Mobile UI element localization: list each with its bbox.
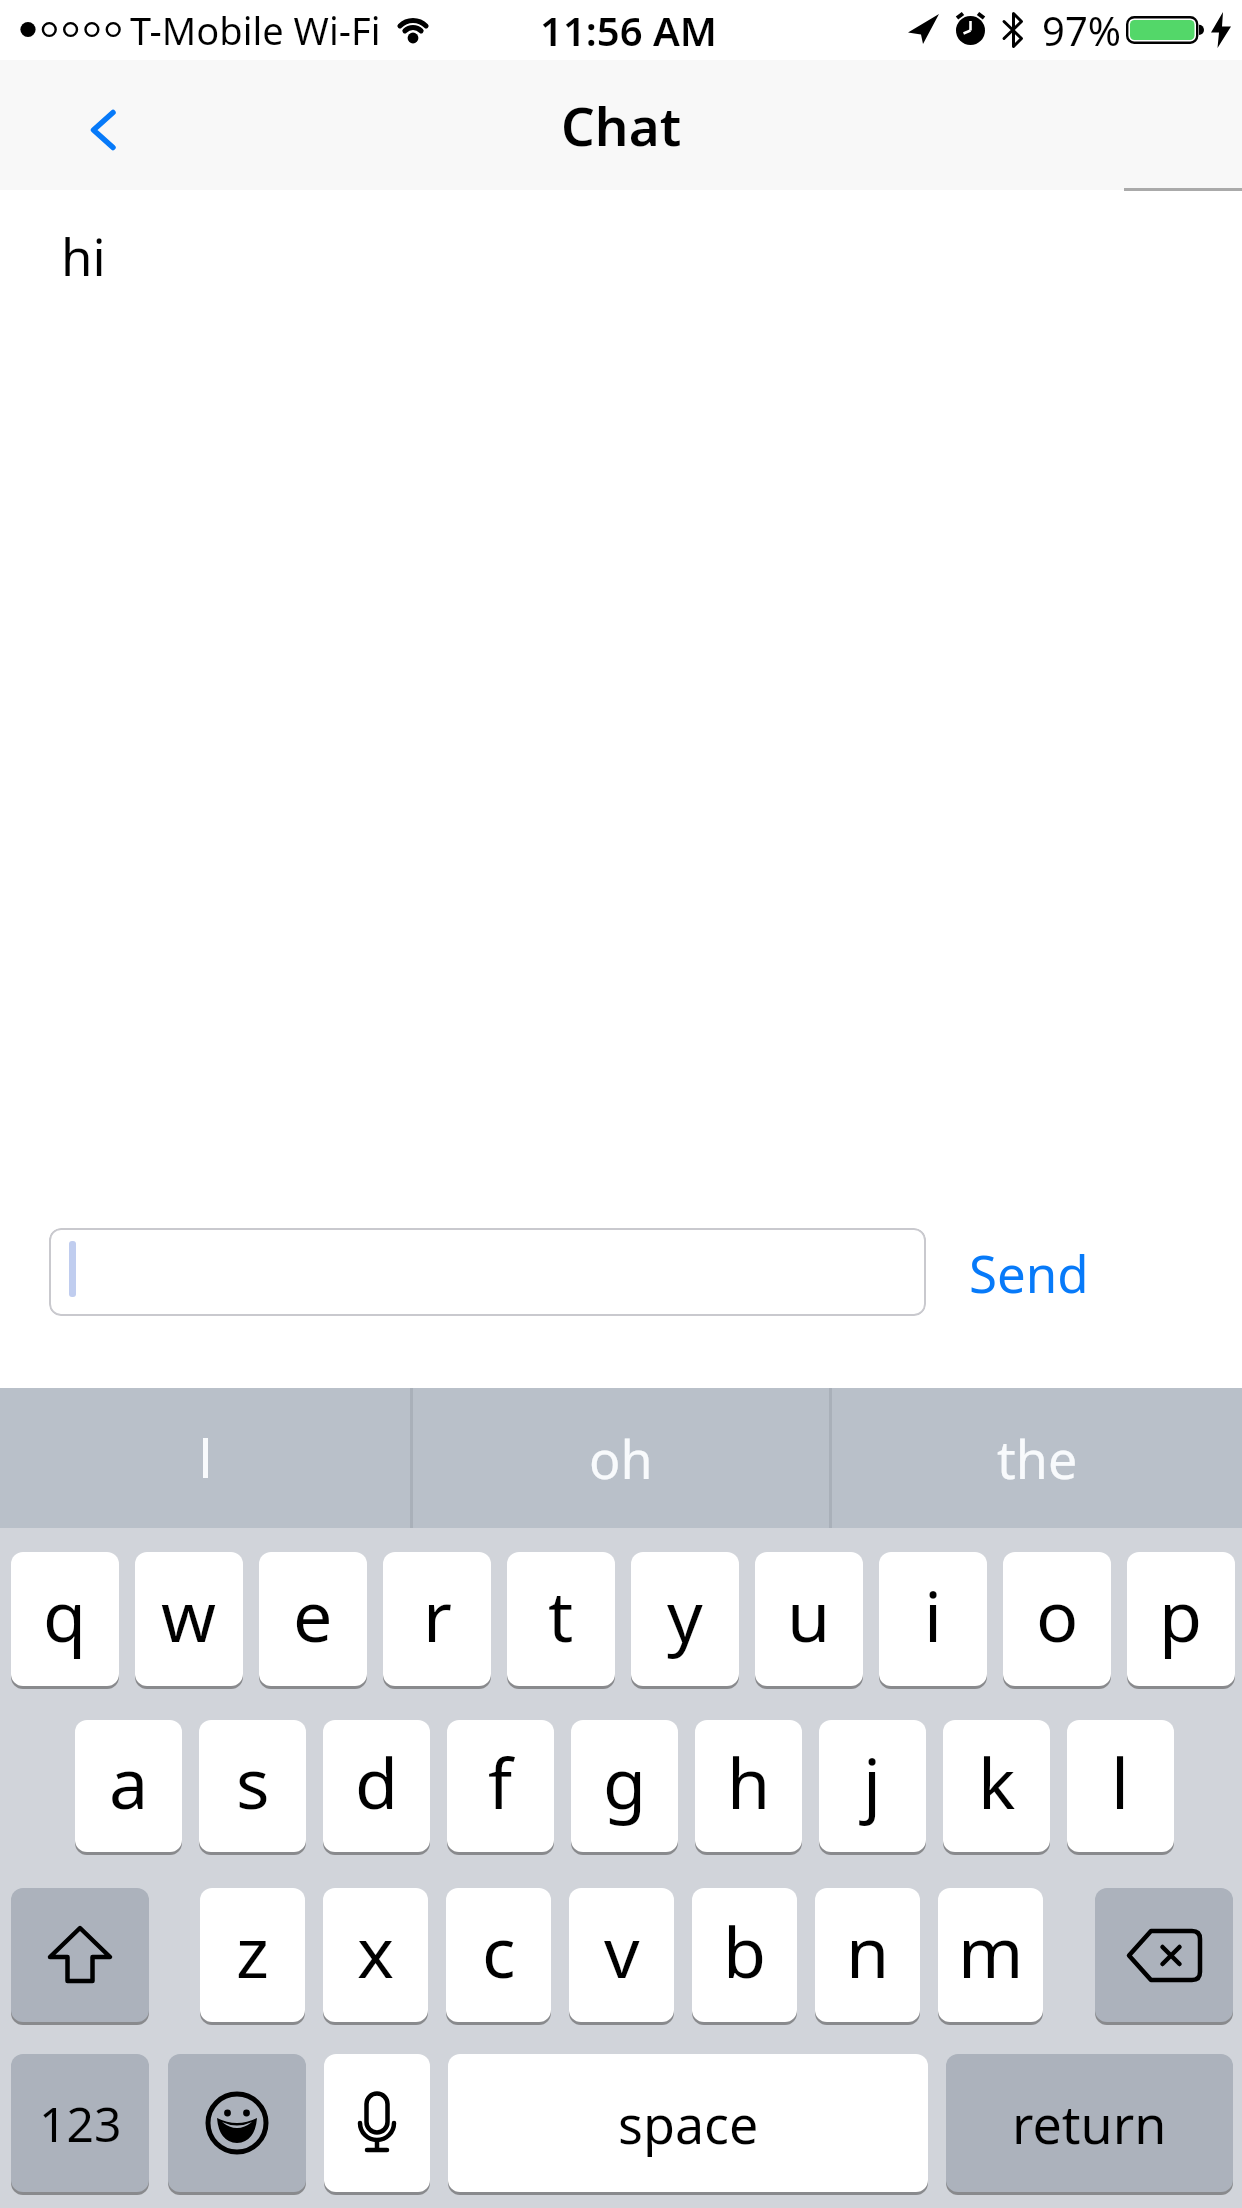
staticText: u bbox=[787, 1567, 831, 1662]
staticText: n bbox=[846, 1903, 890, 1998]
button[interactable]: h bbox=[695, 1720, 802, 1852]
button[interactable]: s bbox=[199, 1720, 306, 1852]
staticText: oh bbox=[589, 1423, 653, 1494]
button[interactable] bbox=[1095, 1888, 1233, 2022]
button[interactable]: the bbox=[832, 1388, 1242, 1528]
staticText: y bbox=[667, 1567, 703, 1662]
button[interactable] bbox=[324, 2054, 430, 2192]
button[interactable]: return bbox=[946, 2054, 1233, 2192]
staticText: Send bbox=[969, 1238, 1089, 1307]
staticText: v bbox=[604, 1903, 640, 1998]
button[interactable]: e bbox=[259, 1552, 367, 1686]
button[interactable]: f bbox=[447, 1720, 554, 1852]
button[interactable]: l bbox=[1067, 1720, 1174, 1852]
staticText: t bbox=[548, 1567, 574, 1662]
button[interactable]: c bbox=[446, 1888, 551, 2022]
button[interactable] bbox=[168, 2054, 306, 2192]
staticText: the bbox=[997, 1423, 1078, 1494]
button[interactable]: Send bbox=[952, 1228, 1092, 1316]
staticText: Chat bbox=[561, 89, 682, 161]
button[interactable]: q bbox=[11, 1552, 119, 1686]
staticText: e bbox=[293, 1567, 333, 1662]
button[interactable]: w bbox=[135, 1552, 243, 1686]
staticText: q bbox=[43, 1567, 87, 1662]
button[interactable]: d bbox=[323, 1720, 430, 1852]
button[interactable]: m bbox=[938, 1888, 1043, 2022]
button[interactable]: n bbox=[815, 1888, 920, 2022]
staticText: i bbox=[924, 1567, 943, 1662]
button[interactable] bbox=[11, 1888, 149, 2022]
button[interactable]: g bbox=[571, 1720, 678, 1852]
staticText: g bbox=[603, 1734, 647, 1829]
staticText: f bbox=[488, 1734, 513, 1829]
button[interactable] bbox=[49, 1228, 926, 1316]
staticText: 123 bbox=[39, 2091, 122, 2156]
staticText: k bbox=[978, 1734, 1016, 1829]
staticText: T-Mobile Wi-Fi bbox=[130, 4, 381, 56]
button[interactable]: r bbox=[383, 1552, 491, 1686]
button[interactable]: x bbox=[323, 1888, 428, 2022]
button[interactable]: v bbox=[569, 1888, 674, 2022]
button[interactable] bbox=[0, 1388, 410, 1528]
button[interactable]: j bbox=[819, 1720, 926, 1852]
button[interactable]: o bbox=[1003, 1552, 1111, 1686]
staticText: d bbox=[355, 1734, 399, 1829]
staticText: j bbox=[863, 1734, 882, 1829]
staticText: space bbox=[618, 2088, 759, 2159]
button[interactable]: k bbox=[943, 1720, 1050, 1852]
staticText: s bbox=[236, 1734, 270, 1829]
staticText: 97% bbox=[1042, 3, 1121, 57]
staticText: a bbox=[109, 1734, 149, 1829]
button[interactable]: p bbox=[1127, 1552, 1235, 1686]
staticText: m bbox=[958, 1903, 1024, 1998]
staticText: l bbox=[1111, 1734, 1130, 1829]
button[interactable]: i bbox=[879, 1552, 987, 1686]
button[interactable]: z bbox=[200, 1888, 305, 2022]
staticText: 11:56 AM bbox=[540, 3, 717, 57]
staticText: x bbox=[357, 1903, 395, 1998]
button[interactable]: t bbox=[507, 1552, 615, 1686]
button[interactable]: a bbox=[75, 1720, 182, 1852]
button[interactable] bbox=[70, 94, 136, 166]
staticText: return bbox=[1012, 2088, 1167, 2159]
button[interactable]: u bbox=[755, 1552, 863, 1686]
button[interactable]: space bbox=[448, 2054, 928, 2192]
staticText: p bbox=[1159, 1567, 1203, 1662]
button[interactable]: b bbox=[692, 1888, 797, 2022]
staticText: r bbox=[423, 1567, 452, 1662]
button[interactable]: 123 bbox=[11, 2054, 149, 2192]
staticText: w bbox=[161, 1567, 217, 1662]
button[interactable]: y bbox=[631, 1552, 739, 1686]
button[interactable]: oh bbox=[413, 1388, 829, 1528]
staticText: c bbox=[482, 1903, 516, 1998]
staticText: h bbox=[727, 1734, 771, 1829]
staticText: z bbox=[236, 1903, 269, 1998]
staticText: o bbox=[1036, 1567, 1079, 1662]
staticText: b bbox=[723, 1903, 767, 1998]
staticText: hi bbox=[61, 221, 106, 285]
